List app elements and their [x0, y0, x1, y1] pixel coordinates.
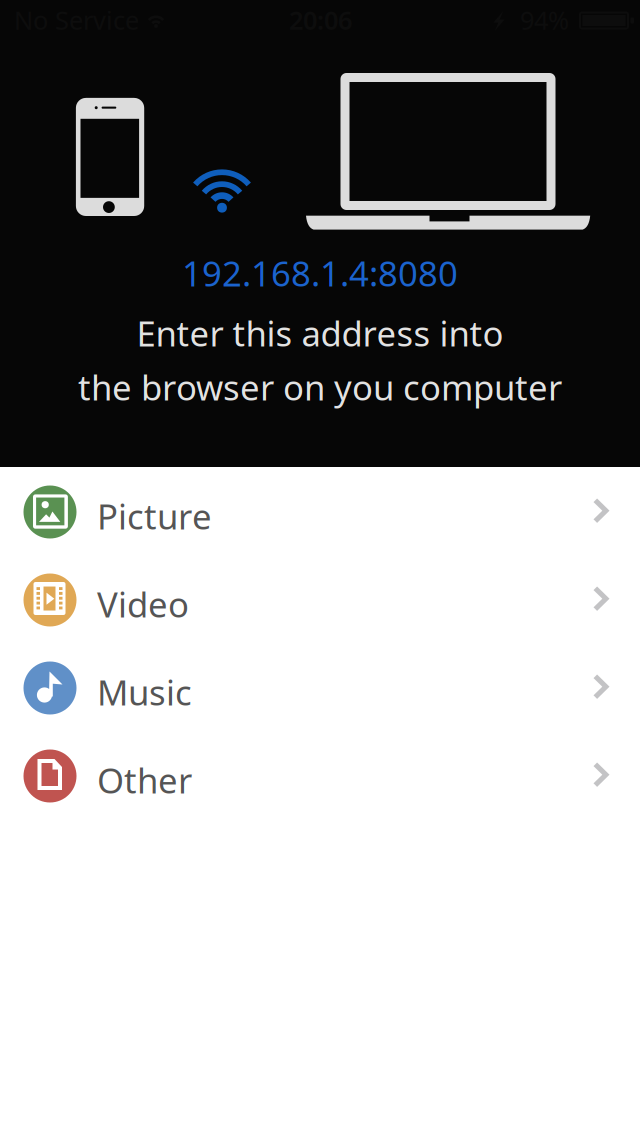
- staticText: Music: [97, 669, 192, 715]
- button[interactable]: Other: [0, 731, 640, 819]
- staticText: Picture: [97, 493, 212, 539]
- button[interactable]: Music: [0, 643, 640, 731]
- staticText: Other: [97, 757, 192, 803]
- button[interactable]: Picture: [0, 467, 640, 555]
- staticText: Video: [97, 581, 189, 627]
- staticText: 192.168.1.4:8080: [182, 250, 458, 296]
- staticText: Enter this address into: [136, 310, 503, 356]
- button[interactable]: Video: [0, 555, 640, 643]
- staticText: the browser on you computer: [78, 364, 562, 410]
